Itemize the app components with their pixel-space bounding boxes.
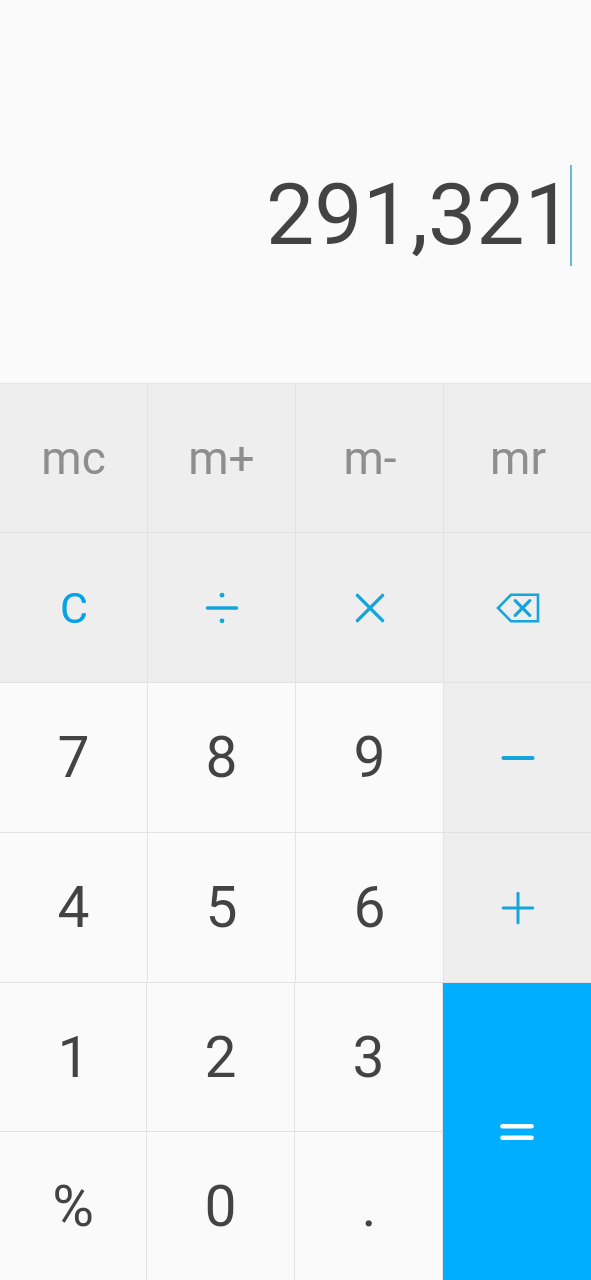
staticText: 9 bbox=[353, 724, 386, 791]
button[interactable]: 1 bbox=[0, 983, 146, 1131]
button[interactable]: Plus bbox=[444, 833, 591, 982]
button[interactable]: Minus bbox=[444, 683, 591, 832]
staticText: 2 bbox=[204, 1024, 237, 1091]
button[interactable]: 5 bbox=[148, 833, 295, 982]
button[interactable]: m- bbox=[296, 384, 443, 532]
staticText: 4 bbox=[57, 874, 90, 941]
button[interactable]: mr bbox=[444, 384, 591, 532]
staticText: m- bbox=[343, 431, 397, 485]
staticText: 291,321 bbox=[266, 164, 573, 265]
staticText: mc bbox=[41, 431, 106, 485]
button[interactable]: C bbox=[0, 533, 147, 682]
button[interactable]: % bbox=[0, 1132, 146, 1280]
button[interactable]: 8 bbox=[148, 683, 295, 832]
button[interactable]: Equals bbox=[443, 983, 591, 1280]
button[interactable]: mc bbox=[0, 384, 147, 532]
button[interactable]: 7 bbox=[0, 683, 147, 832]
button[interactable]: Multiply bbox=[296, 533, 443, 682]
staticText: . bbox=[361, 1173, 377, 1240]
staticText: 5 bbox=[205, 874, 238, 941]
staticText: mr bbox=[490, 431, 546, 485]
staticText: 1 bbox=[57, 1024, 90, 1091]
button[interactable]: Backspace bbox=[444, 533, 591, 682]
button[interactable]: . bbox=[295, 1132, 442, 1280]
staticText: C bbox=[60, 583, 88, 633]
staticText: 8 bbox=[205, 724, 238, 791]
staticText: % bbox=[52, 1173, 94, 1240]
button[interactable]: 2 bbox=[147, 983, 294, 1131]
button[interactable]: 3 bbox=[295, 983, 442, 1131]
button[interactable]: Divide bbox=[148, 533, 295, 682]
button[interactable]: 9 bbox=[296, 683, 443, 832]
staticText: 0 bbox=[204, 1173, 237, 1240]
staticText: 6 bbox=[353, 874, 386, 941]
button[interactable]: 4 bbox=[0, 833, 147, 982]
staticText: 7 bbox=[57, 724, 90, 791]
button[interactable]: 0 bbox=[147, 1132, 294, 1280]
button[interactable]: 6 bbox=[296, 833, 443, 982]
staticText: m+ bbox=[188, 431, 255, 485]
staticText: 3 bbox=[352, 1024, 385, 1091]
button[interactable]: m+ bbox=[148, 384, 295, 532]
